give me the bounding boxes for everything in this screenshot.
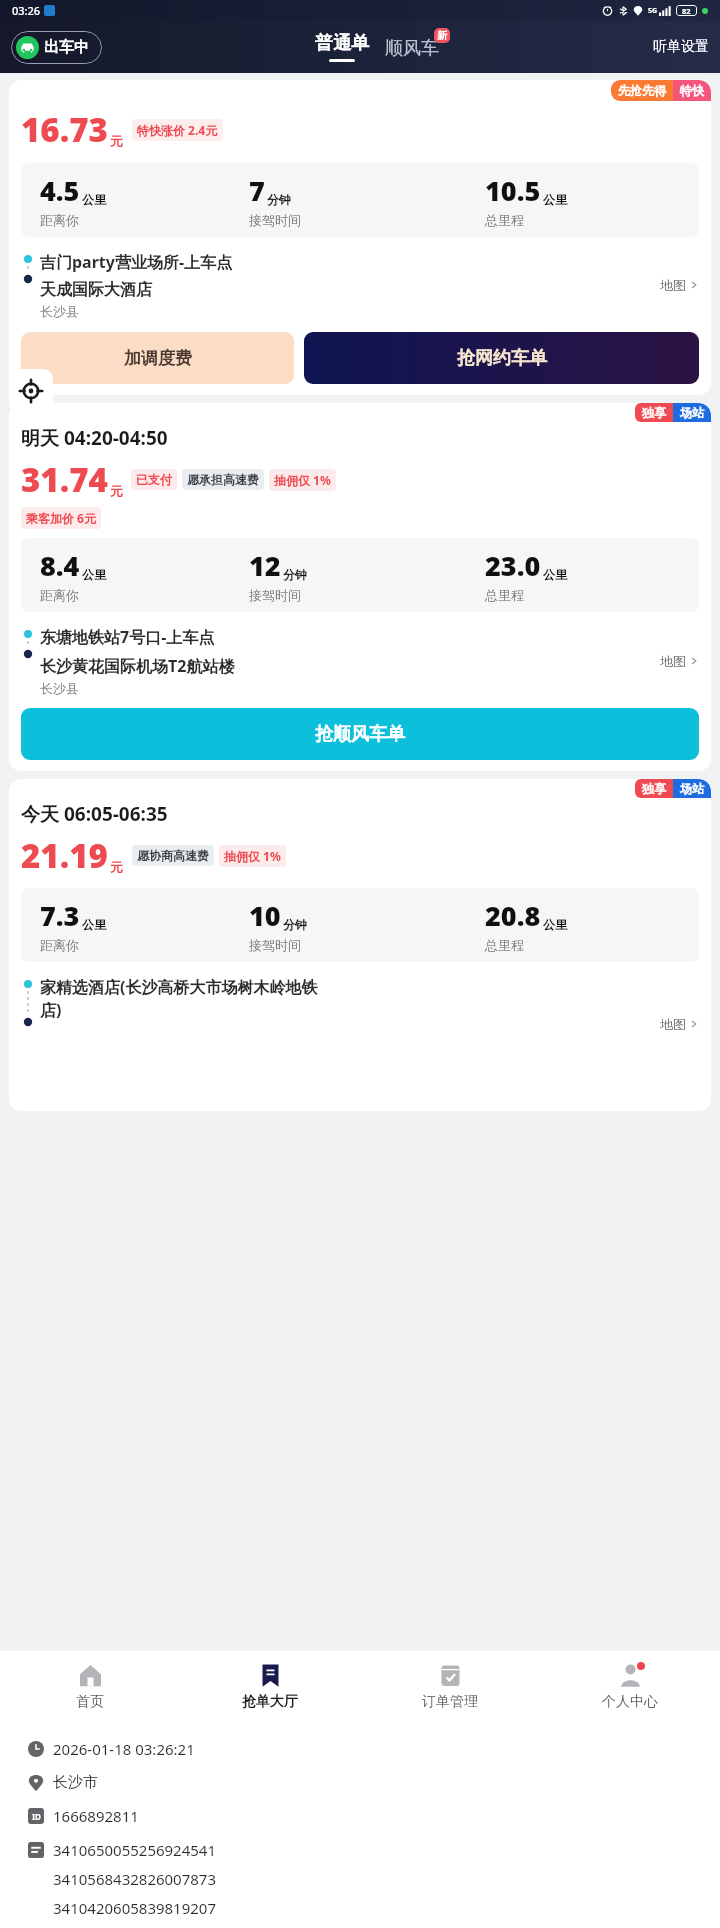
staticText: 加调度费 (124, 348, 192, 369)
staticText: 天成国际大酒店 (40, 280, 152, 300)
staticText: 接驾时间 (249, 212, 301, 228)
staticText: 出车中 (44, 38, 89, 57)
button[interactable]: 顺风车 (385, 34, 439, 60)
staticText: 抢单大厅 (242, 1693, 298, 1711)
staticText: 长沙市 (53, 1773, 98, 1792)
staticText: 听单设置 (653, 38, 709, 56)
staticText: 8.4 (40, 547, 80, 584)
staticText: 公里 (543, 567, 567, 582)
staticText: 公里 (543, 192, 567, 207)
staticText: 20.8 (485, 897, 541, 934)
staticText: 个人中心 (602, 1693, 658, 1711)
staticText: 愿承担高速费 (187, 472, 259, 487)
staticText: 已支付 (136, 472, 172, 487)
staticText: 1666892811 (53, 1806, 139, 1826)
staticText: 地图 (660, 1016, 686, 1032)
staticText: 31.74 (21, 457, 108, 502)
button[interactable]: 出车中 (11, 31, 102, 64)
staticText: 5G (648, 6, 658, 16)
staticText: 场站 (680, 405, 704, 420)
staticText: 21.19 (21, 833, 108, 878)
staticText: 3410420605839819207 (53, 1898, 217, 1918)
staticText: 明天 04:20-04:50 (21, 425, 168, 451)
staticText: 抢网约车单 (457, 347, 547, 370)
staticText: 场站 (680, 781, 704, 796)
staticText: 元 (110, 483, 123, 499)
staticText: 总里程 (485, 937, 524, 953)
staticText: 吉门party营业场所-上车点 (40, 251, 233, 273)
staticText: 7.3 (40, 897, 80, 934)
button[interactable]: 加调度费 (21, 332, 294, 384)
button[interactable]: 独享 (9, 779, 711, 1111)
staticText: 03:26 (12, 3, 41, 18)
staticText: 愿协商高速费 (137, 848, 209, 863)
button[interactable]: 普通单 (315, 32, 369, 62)
staticText: 2026-01-18 03:26:21 (53, 1739, 195, 1759)
button[interactable]: 首页 (0, 1651, 180, 1723)
staticText: 10 (249, 897, 281, 934)
staticText: 接驾时间 (249, 587, 301, 603)
staticText: 12 (249, 547, 281, 584)
staticText: 地图 (660, 653, 686, 669)
button[interactable]: 抢网约车单 (304, 332, 699, 384)
staticText: 7 (249, 172, 265, 209)
staticText: 距离你 (40, 937, 79, 953)
staticText: 3410568432826007873 (53, 1869, 217, 1889)
staticText: 分钟 (283, 917, 307, 932)
staticText: 元 (110, 133, 123, 149)
staticText: 总里程 (485, 212, 524, 228)
staticText: 23.0 (485, 547, 541, 584)
staticText: 独享 (642, 781, 666, 796)
staticText: 独享 (642, 405, 666, 420)
staticText: 新 (437, 29, 447, 42)
staticText: 元 (110, 859, 123, 875)
staticText: 订单管理 (422, 1693, 478, 1711)
staticText: 公里 (82, 567, 106, 582)
staticText: 长沙县 (40, 303, 79, 319)
staticText: 分钟 (283, 567, 307, 582)
staticText: 3410650055256924541 (53, 1840, 217, 1860)
staticText: 先抢先得 (618, 83, 666, 98)
button[interactable]: 地图 (660, 653, 699, 669)
staticText: 特快 (680, 83, 704, 98)
button[interactable]: 订单管理 (360, 1651, 540, 1723)
staticText: 长沙黄花国际机场T2航站楼 (40, 655, 235, 677)
staticText: 距离你 (40, 212, 79, 228)
button[interactable]: 独享 (9, 403, 711, 771)
staticText: 顺风车 (385, 37, 439, 60)
button[interactable]: 地图 (660, 277, 699, 293)
staticText: 10.5 (485, 172, 541, 209)
button[interactable]: 抢顺风车单 (21, 708, 699, 760)
staticText: 公里 (82, 917, 106, 932)
button[interactable]: 个人中心 (540, 1651, 720, 1723)
staticText: 距离你 (40, 587, 79, 603)
staticText: 4.5 (40, 172, 80, 209)
staticText: 总里程 (485, 587, 524, 603)
staticText: 东塘地铁站7号口-上车点 (40, 626, 215, 648)
staticText: 家精选酒店(长沙高桥大市场树木岭地铁 店) (40, 976, 318, 1021)
staticText: 抢顺风车单 (315, 723, 405, 746)
staticText: 16.73 (21, 107, 108, 152)
staticText: 抽佣仅 1% (224, 848, 281, 864)
button[interactable]: Locate me (9, 369, 53, 413)
staticText: 分钟 (267, 192, 291, 207)
staticText: 公里 (82, 192, 106, 207)
staticText: 接驾时间 (249, 937, 301, 953)
staticText: 首页 (76, 1693, 104, 1711)
button[interactable]: 抢单大厅 (180, 1651, 360, 1723)
staticText: 今天 06:05-06:35 (21, 801, 168, 827)
staticText: 抽佣仅 1% (274, 472, 331, 488)
staticText: 特快涨价 2.4元 (137, 122, 218, 138)
staticText: 乘客加价 6元 (26, 510, 96, 526)
staticText: ID (32, 1811, 41, 1822)
staticText: 公里 (543, 917, 567, 932)
button[interactable]: 听单设置 (653, 38, 709, 56)
staticText: 普通单 (315, 32, 369, 55)
staticText: 地图 (660, 277, 686, 293)
staticText: 长沙县 (40, 680, 79, 696)
button[interactable]: 先抢先得 (9, 80, 711, 395)
button[interactable]: 地图 (660, 1016, 699, 1032)
staticText: 82 (682, 6, 691, 16)
